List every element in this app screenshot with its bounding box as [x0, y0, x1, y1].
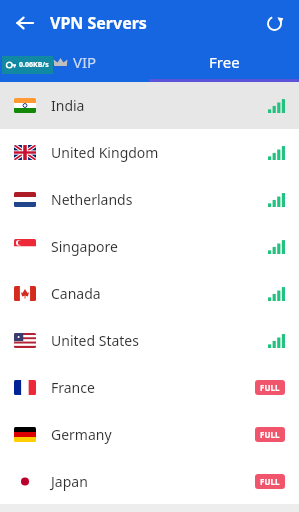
- staticText: India: [51, 96, 85, 115]
- button[interactable]: France: [0, 364, 299, 411]
- staticText: Japan: [51, 472, 88, 491]
- staticText: Singapore: [51, 237, 118, 256]
- button[interactable]: Germany: [0, 411, 299, 458]
- staticText: Netherlands: [51, 190, 133, 209]
- staticText: United States: [51, 331, 139, 350]
- staticText: VIP: [73, 52, 97, 72]
- staticText: Germany: [51, 425, 112, 444]
- button[interactable]: Canada: [0, 270, 299, 317]
- button[interactable]: Japan: [0, 458, 299, 504]
- button[interactable]: Netherlands: [0, 176, 299, 223]
- staticText: FULL: [260, 382, 280, 393]
- staticText: Free: [209, 52, 240, 72]
- button[interactable]: Singapore: [0, 223, 299, 270]
- button[interactable]: United States: [0, 317, 299, 364]
- button[interactable]: Free: [149, 45, 299, 79]
- staticText: Canada: [51, 284, 101, 303]
- button[interactable]: Refresh: [257, 6, 291, 40]
- staticText: FULL: [260, 476, 280, 487]
- staticText: 0.06KB/s: [19, 60, 49, 70]
- staticText: FULL: [260, 429, 280, 440]
- staticText: VPN Servers: [50, 12, 147, 34]
- staticText: France: [51, 378, 95, 397]
- button[interactable]: India: [0, 82, 299, 129]
- button[interactable]: Back: [8, 6, 42, 40]
- staticText: United Kingdom: [51, 143, 159, 162]
- button[interactable]: United Kingdom: [0, 129, 299, 176]
- button[interactable]: VIP: [0, 45, 149, 79]
